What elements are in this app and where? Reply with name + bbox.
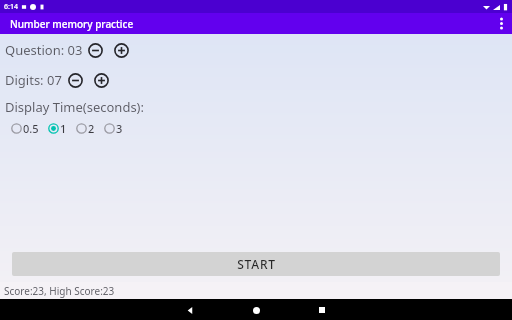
button[interactable]: Increase Digits: 07 (92, 71, 111, 90)
staticText: START (237, 256, 276, 272)
staticText: 2 (88, 121, 95, 136)
staticText: Question: 03 (5, 41, 83, 59)
button[interactable]: Back (180, 300, 200, 320)
staticText: Score:23, High Score:23 (4, 284, 115, 298)
staticText: 6:14 (4, 2, 18, 12)
button[interactable]: Increase Question: 03 (112, 41, 131, 60)
staticText: 3 (116, 121, 123, 136)
button[interactable]: Recents (312, 300, 332, 320)
staticText: Digits: 07 (5, 71, 62, 89)
staticText: 1 (60, 121, 67, 136)
button[interactable]: 0.5 (11, 121, 39, 136)
staticText: Number memory practice (10, 17, 134, 31)
staticText: Display Time(seconds): (5, 98, 144, 116)
button[interactable]: 3 (104, 121, 123, 136)
button[interactable]: Decrease Question: 03 (86, 41, 105, 60)
button[interactable]: Home (246, 300, 266, 320)
button[interactable]: 1 (48, 121, 67, 136)
button[interactable]: Decrease Digits: 07 (66, 71, 85, 90)
button[interactable]: 2 (76, 121, 95, 136)
button[interactable]: More options (491, 13, 512, 34)
staticText: 0.5 (23, 121, 39, 136)
button[interactable]: START (12, 252, 500, 276)
